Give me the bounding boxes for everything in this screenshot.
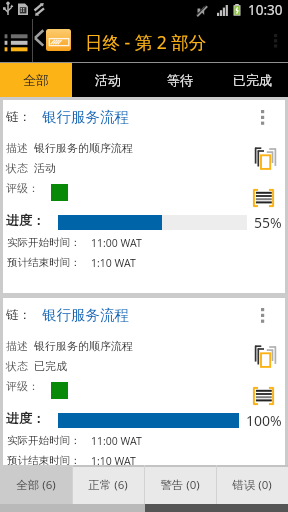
staticText: 活动 [34, 161, 56, 175]
staticText: 评级： [6, 181, 39, 195]
button[interactable]: 全部 (6) [0, 465, 72, 504]
staticText: 全部 (6) [16, 477, 56, 493]
staticText: 进度： [6, 410, 45, 426]
button[interactable]: More options [264, 19, 288, 62]
staticText: 实际开始时间： [7, 236, 81, 249]
staticText: 1:10 WAT [91, 454, 136, 468]
staticText: 已完成 [34, 359, 67, 373]
button[interactable]: 错误 (0) [216, 465, 288, 504]
staticText: 银行服务流程 [42, 108, 129, 126]
staticText: 链： [6, 307, 31, 323]
button[interactable]: 全部 [0, 63, 72, 97]
staticText: 状态 [6, 359, 28, 373]
staticText: 链： [6, 109, 31, 125]
button[interactable]: Details [245, 378, 281, 414]
button[interactable]: More options [253, 304, 273, 328]
staticText: 预计结束时间： [7, 454, 81, 467]
staticText: 预计结束时间： [7, 256, 81, 269]
staticText: 10:30 [248, 1, 283, 19]
button[interactable]: App icon [46, 29, 71, 51]
staticText: 11:00 WAT [91, 236, 142, 250]
staticText: 已完成 [233, 72, 272, 88]
button[interactable]: 警告 (0) [144, 465, 216, 504]
button[interactable]: Copy [247, 338, 283, 374]
staticText: 银行服务的顺序流程 [34, 141, 133, 155]
staticText: 错误 (0) [232, 477, 272, 493]
button[interactable]: 活动 [72, 63, 144, 97]
button[interactable]: More options [3, 100, 285, 293]
button[interactable]: Back [33, 19, 45, 62]
staticText: 活动 [95, 72, 121, 88]
button[interactable]: Menu [0, 19, 32, 62]
staticText: 状态 [6, 161, 28, 175]
staticText: 描述 [6, 339, 28, 353]
staticText: 实际开始时间： [7, 434, 81, 447]
staticText: 日终 - 第 2 部分 [85, 30, 207, 54]
button[interactable]: 已完成 [216, 63, 288, 97]
staticText: 进度： [6, 212, 45, 228]
button[interactable]: 正常 (6) [72, 465, 144, 504]
staticText: 11:00 WAT [91, 434, 142, 448]
staticText: 全部 [23, 72, 49, 88]
button[interactable]: More options [3, 298, 285, 465]
staticText: 等待 [167, 72, 193, 88]
button[interactable]: Details [245, 180, 281, 216]
staticText: 警告 (0) [160, 477, 200, 493]
button[interactable]: Copy [247, 140, 283, 176]
staticText: 银行服务流程 [42, 306, 129, 324]
staticText: 描述 [6, 141, 28, 155]
staticText: 评级： [6, 379, 39, 393]
staticText: 银行服务的顺序流程 [34, 339, 133, 353]
button[interactable]: 等待 [144, 63, 216, 97]
staticText: 55% [254, 213, 282, 232]
staticText: 正常 (6) [88, 477, 128, 493]
button[interactable]: More options [253, 106, 273, 130]
staticText: 100% [246, 411, 282, 430]
staticText: 1:10 WAT [91, 256, 136, 270]
